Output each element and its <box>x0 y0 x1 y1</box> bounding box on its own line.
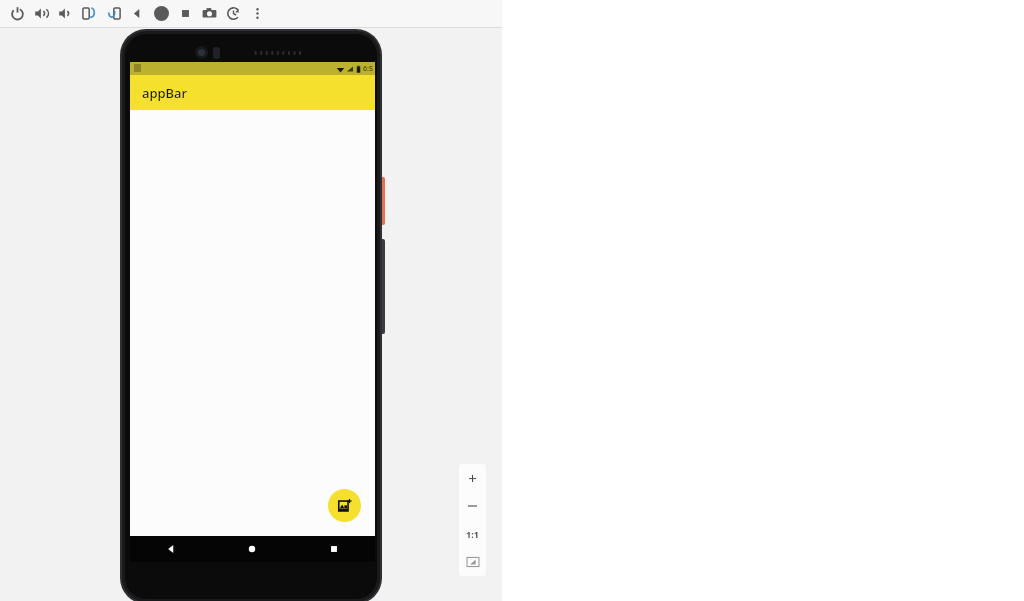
button[interactable]: Actual size <box>459 520 486 548</box>
button[interactable]: Add photo <box>328 489 361 522</box>
staticText: 1:1 <box>466 528 479 540</box>
button[interactable]: Fit to window <box>459 548 486 576</box>
button[interactable]: Back <box>125 0 149 27</box>
button[interactable]: Home <box>211 536 293 562</box>
button[interactable]: Screenshot <box>197 0 221 27</box>
button[interactable]: More <box>245 0 269 27</box>
button[interactable]: History <box>221 0 245 27</box>
button[interactable]: Overview <box>293 536 375 562</box>
button[interactable]: Back <box>130 536 211 562</box>
button[interactable]: Zoom out <box>459 492 486 520</box>
button[interactable]: Home <box>149 0 173 27</box>
staticText: + <box>468 468 477 488</box>
button[interactable]: Volume down <box>53 0 77 27</box>
button[interactable]: appBar <box>130 75 375 110</box>
button[interactable]: Rotate right <box>101 0 125 27</box>
staticText: appBar <box>142 84 187 102</box>
button[interactable]: Power <box>5 0 29 27</box>
button[interactable]: Zoom in <box>459 464 486 492</box>
staticText: 6:5 <box>363 64 373 74</box>
button[interactable]: Rotate left <box>77 0 101 27</box>
button[interactable]: Volume up <box>29 0 53 27</box>
button[interactable]: Overview <box>173 0 197 27</box>
